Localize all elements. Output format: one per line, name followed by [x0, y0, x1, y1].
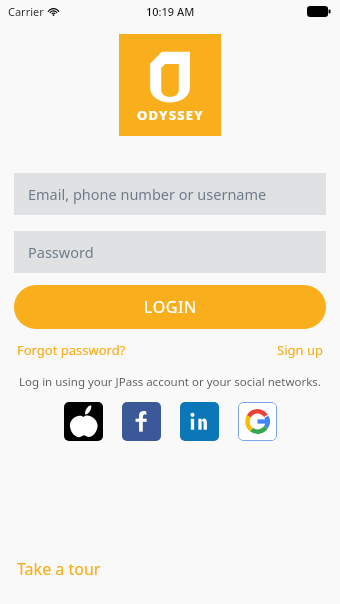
button[interactable]: LOGIN: [14, 285, 326, 329]
staticText: Carrier: [8, 4, 44, 19]
staticText: 10:19 AM: [146, 4, 195, 19]
staticText: ODYSSEY: [137, 106, 204, 124]
button[interactable]: Email, phone number or username: [14, 173, 326, 215]
staticText: Password: [28, 242, 94, 262]
staticText: Email, phone number or username: [28, 184, 267, 204]
staticText: Take a tour: [17, 558, 101, 580]
button[interactable]: Sign in with Facebook: [122, 402, 161, 441]
button[interactable]: Sign in with LinkedIn: [180, 402, 219, 441]
button[interactable]: Take a tour: [17, 558, 101, 580]
button[interactable]: Sign in with Apple: [64, 402, 103, 441]
button[interactable]: Sign up: [277, 341, 323, 359]
button[interactable]: Password: [14, 231, 326, 273]
staticText: Sign up: [277, 341, 323, 359]
staticText: Log in using your JPass account or your …: [0, 374, 340, 390]
button[interactable]: Forgot password?: [17, 341, 126, 359]
staticText: Forgot password?: [17, 341, 126, 359]
staticText: LOGIN: [144, 296, 197, 318]
button[interactable]: Sign in with Google: [238, 402, 277, 441]
